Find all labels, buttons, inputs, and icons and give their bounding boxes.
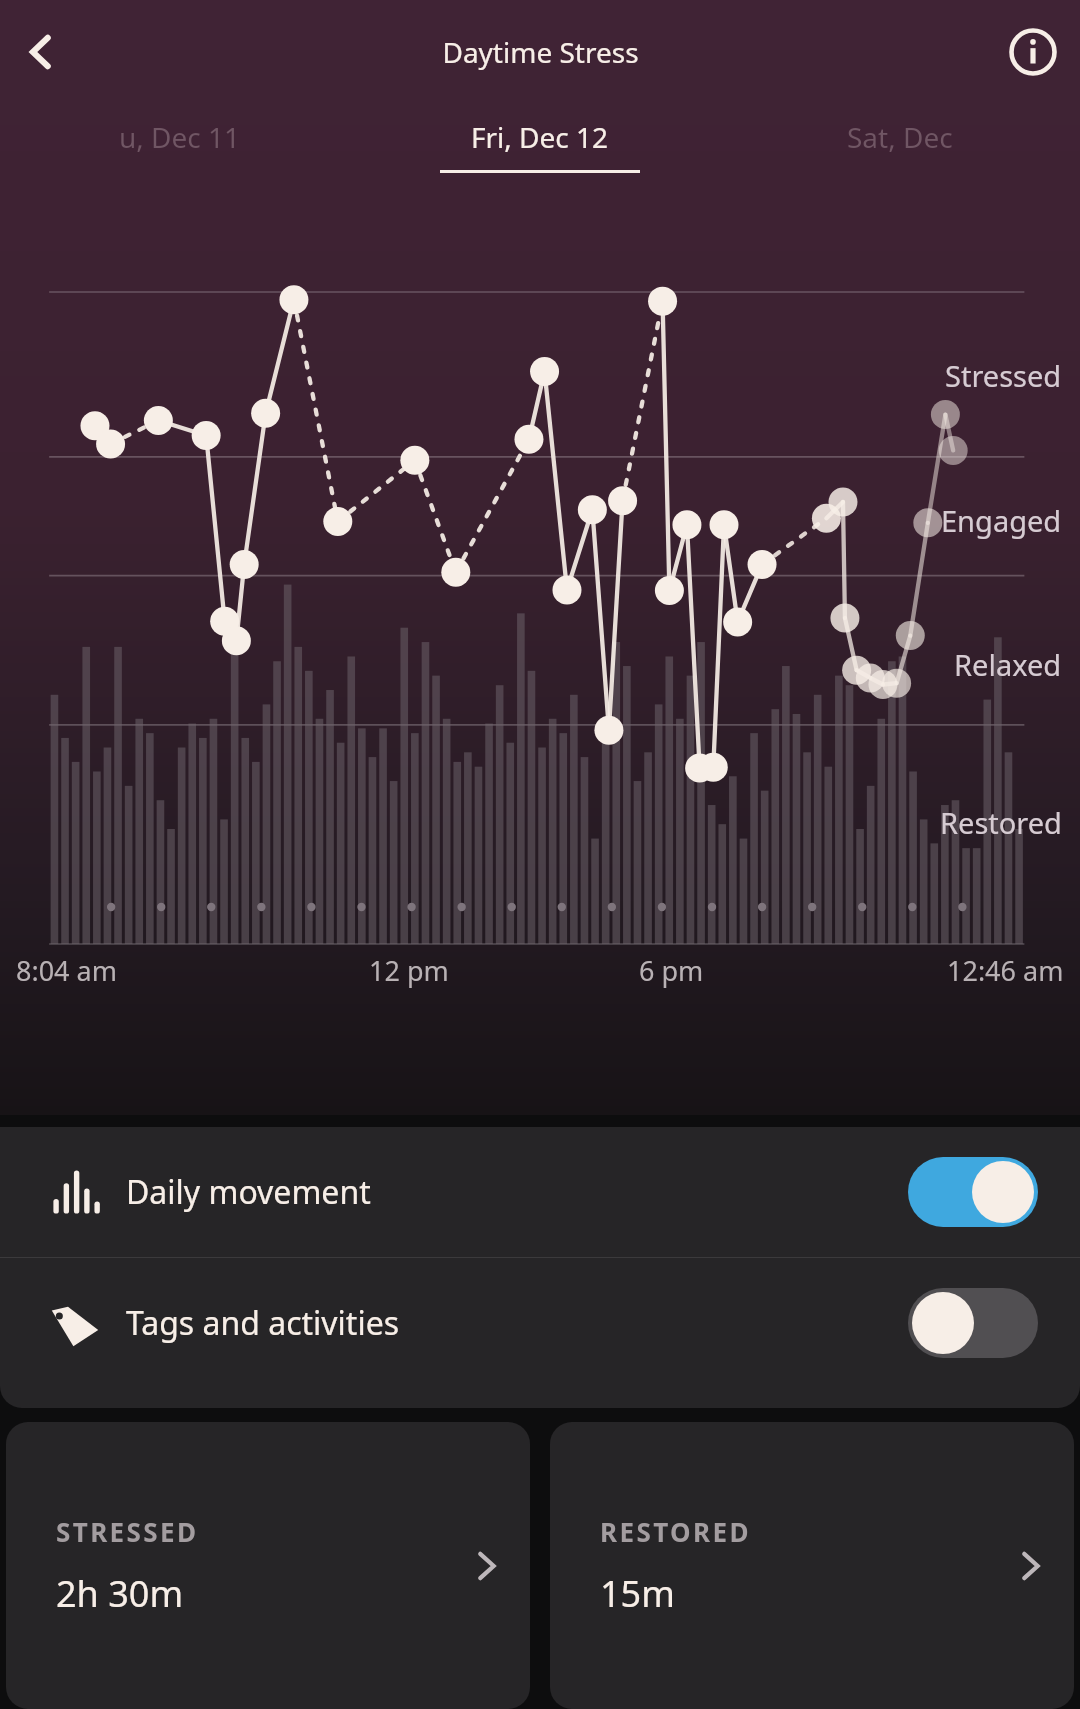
button[interactable]: Tags and activities <box>0 1258 1080 1388</box>
staticText: Restored <box>940 803 1062 842</box>
staticText: Stressed <box>945 356 1062 395</box>
staticText: 15m <box>600 1569 675 1618</box>
staticText: 2h 30m <box>56 1569 184 1618</box>
button[interactable]: Info <box>1000 19 1066 85</box>
button[interactable]: Sat, Dec <box>720 118 1080 156</box>
staticText: STRESSED <box>56 1514 199 1549</box>
staticText: Daily movement <box>126 1170 371 1214</box>
staticText: Daytime Stress <box>442 33 639 71</box>
button[interactable]: Off <box>908 1288 1038 1358</box>
staticText: 6 pm <box>639 952 704 989</box>
button[interactable]: u, Dec 11 <box>0 118 360 156</box>
staticText: Sat, Dec <box>847 118 953 156</box>
button[interactable]: RESTORED <box>550 1422 1074 1709</box>
button[interactable]: On <box>908 1157 1038 1227</box>
staticText: RESTORED <box>600 1514 751 1549</box>
button[interactable]: Daily movement <box>0 1127 1080 1257</box>
button[interactable]: Fri, Dec 12 <box>360 118 720 173</box>
button[interactable]: STRESSED <box>6 1422 530 1709</box>
staticText: Relaxed <box>954 645 1062 684</box>
staticText: u, Dec 11 <box>119 118 241 156</box>
staticText: Tags and activities <box>126 1301 400 1345</box>
staticText: 12:46 am <box>947 952 1064 989</box>
staticText: Fri, Dec 12 <box>471 118 609 156</box>
button[interactable]: Back <box>8 19 74 85</box>
staticText: Engaged <box>941 501 1062 540</box>
staticText: 8:04 am <box>16 952 117 989</box>
staticText: 12 pm <box>369 952 449 989</box>
